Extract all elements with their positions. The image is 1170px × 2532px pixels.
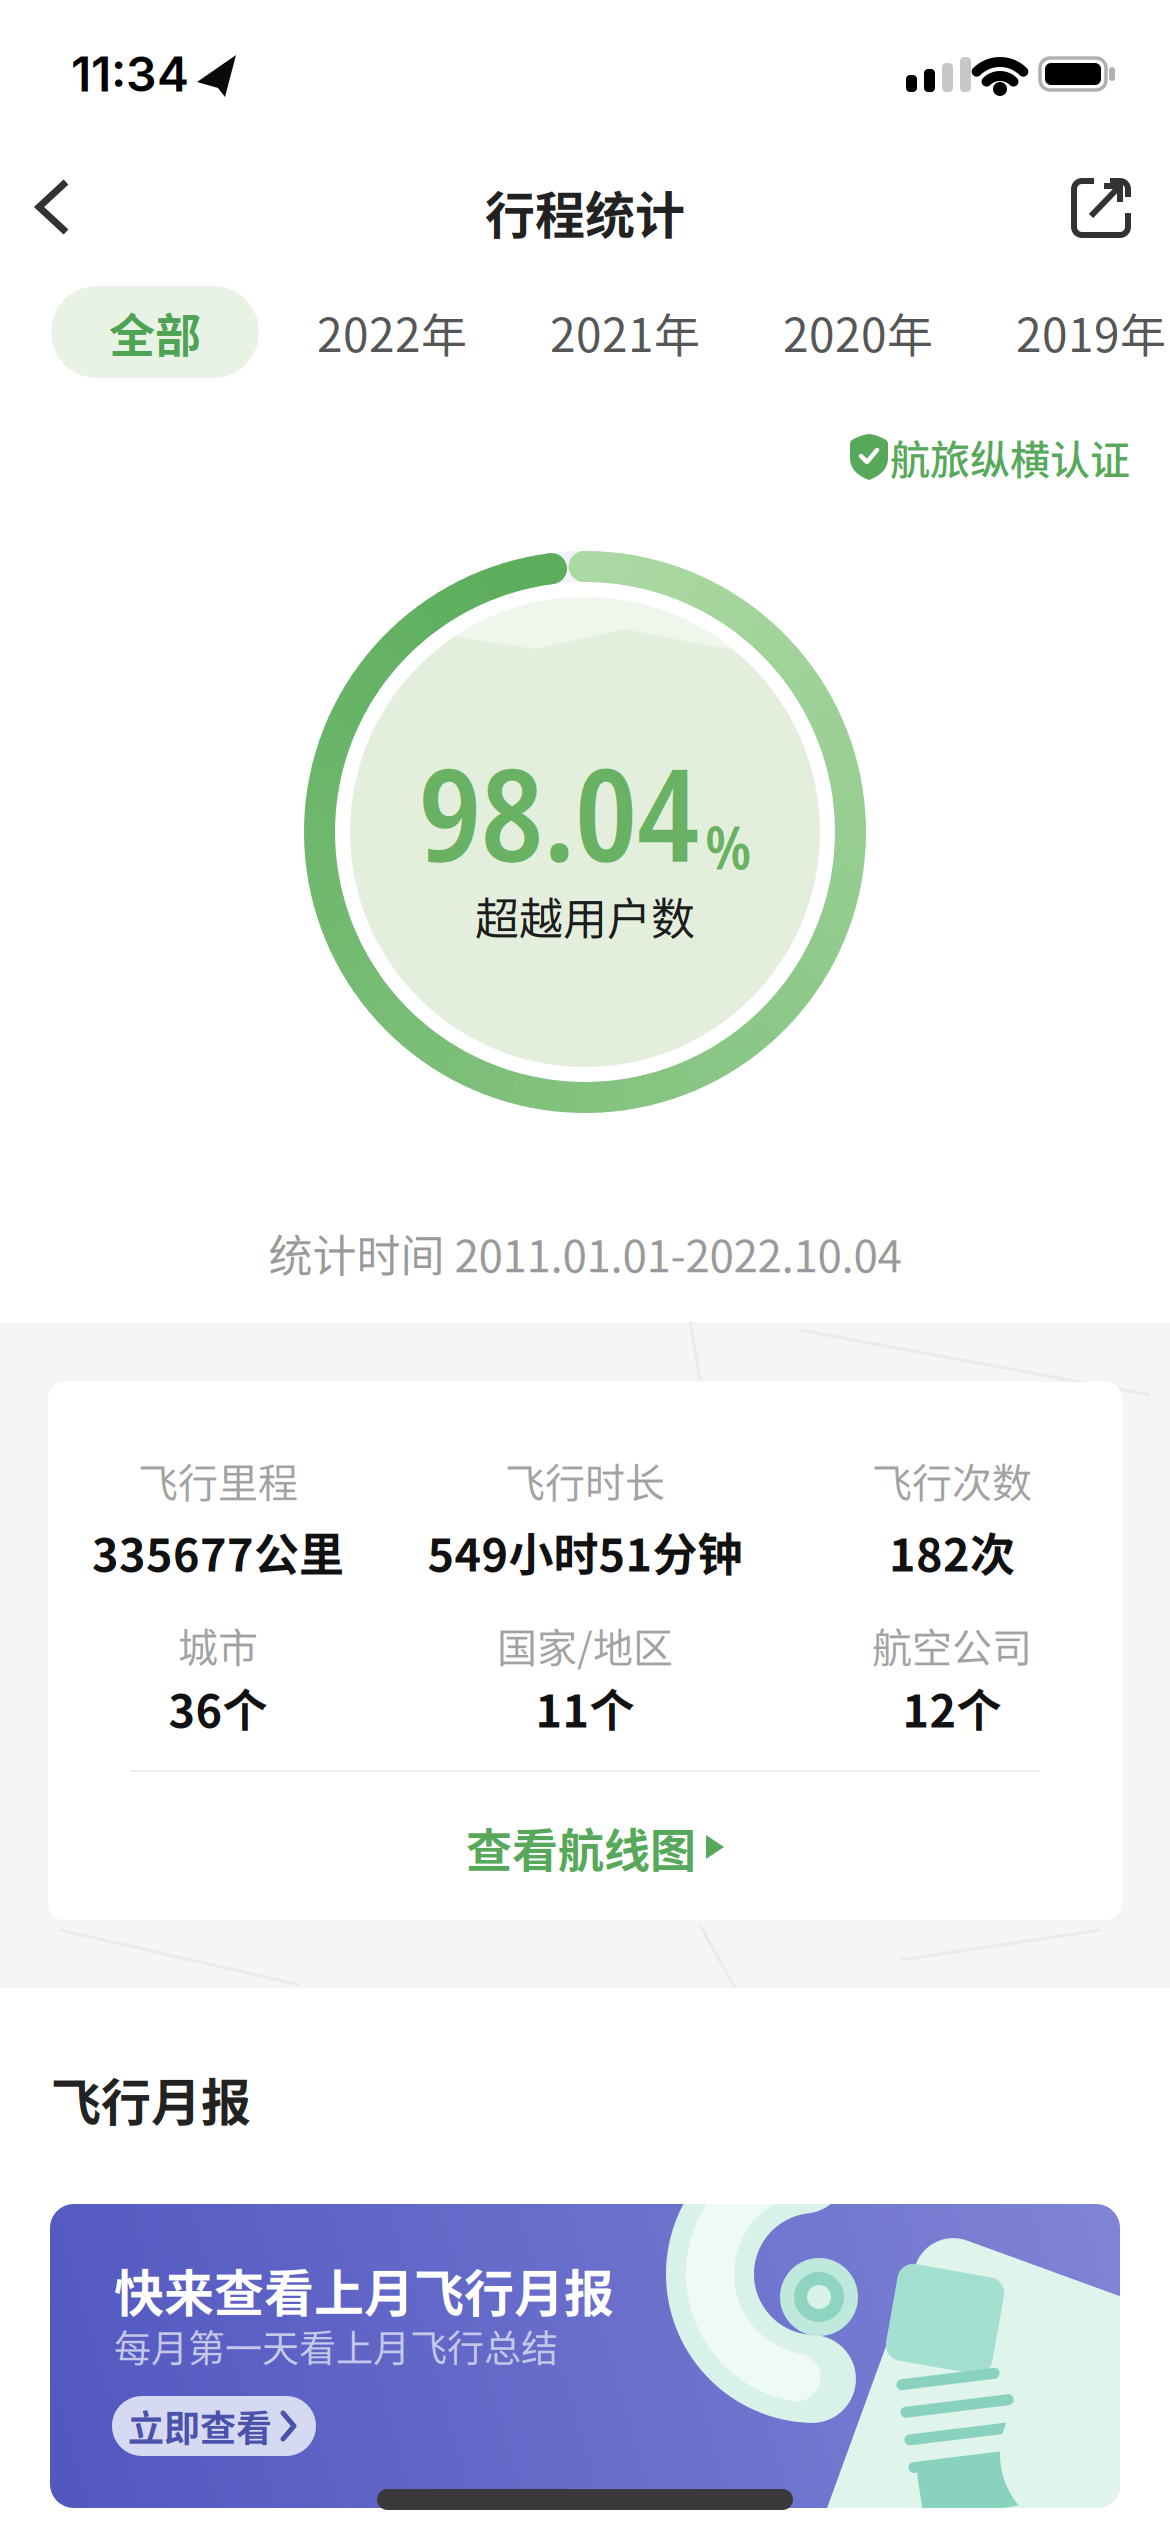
staticText: 国家/地区 bbox=[497, 1616, 673, 1674]
staticText: 全部 bbox=[109, 299, 201, 365]
staticText: 超越用户数 bbox=[475, 884, 695, 948]
staticText: 城市 bbox=[178, 1616, 258, 1674]
staticText: 549小时51分钟 bbox=[427, 1519, 742, 1585]
staticText: 2019年 bbox=[1016, 299, 1166, 365]
staticText: 每月第一天看上月飞行总结 bbox=[114, 2319, 558, 2373]
staticText: 2022年 bbox=[317, 299, 467, 365]
staticText: 飞行月报 bbox=[51, 2063, 251, 2135]
staticText: 98.04 bbox=[419, 725, 699, 899]
staticText: 2021年 bbox=[550, 299, 700, 365]
staticText: 11个 bbox=[535, 1675, 634, 1741]
staticText: 航空公司 bbox=[872, 1616, 1032, 1674]
staticText: 飞行里程 bbox=[138, 1451, 298, 1509]
staticText: 36个 bbox=[168, 1675, 267, 1741]
staticText: 行程统计 bbox=[485, 176, 685, 248]
staticText: 飞行时长 bbox=[505, 1451, 665, 1509]
staticText: % bbox=[705, 805, 751, 887]
staticText: 立即查看 bbox=[128, 2400, 272, 2452]
staticText: 快来查看上月飞行月报 bbox=[114, 2254, 614, 2326]
staticText: 飞行次数 bbox=[872, 1451, 1032, 1509]
staticText: 航旅纵横认证 bbox=[890, 428, 1130, 486]
staticText: 182次 bbox=[889, 1519, 1015, 1585]
staticText: 11:34 bbox=[71, 45, 189, 103]
staticText: 12个 bbox=[902, 1675, 1001, 1741]
staticText: 2020年 bbox=[783, 299, 933, 365]
staticText: 查看航线图 bbox=[466, 1814, 696, 1880]
staticText: 统计时间 2011.01.01-2022.10.04 bbox=[268, 1221, 901, 1285]
staticText: 335677公里 bbox=[92, 1519, 344, 1585]
